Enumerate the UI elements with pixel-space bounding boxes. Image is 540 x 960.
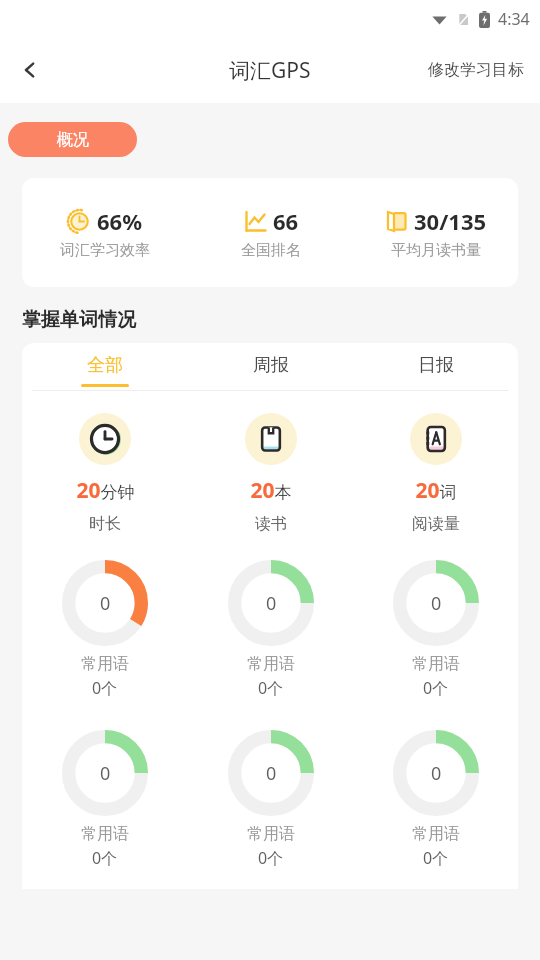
staticText: 0 xyxy=(266,591,277,616)
staticText: 20词 xyxy=(415,476,457,505)
button[interactable]: 0 xyxy=(22,730,188,869)
staticText: 全国排名 xyxy=(241,241,301,260)
staticText: 常用语 xyxy=(81,654,129,674)
staticText: 常用语 xyxy=(412,654,460,674)
staticText: 0 xyxy=(100,761,111,786)
staticText: 修改学习目标 xyxy=(428,60,524,80)
staticText: 20分钟 xyxy=(76,476,135,505)
button[interactable]: 概况 xyxy=(8,122,137,157)
button[interactable]: 66% xyxy=(22,206,188,260)
staticText: 0个 xyxy=(258,677,284,699)
button[interactable]: 周报 xyxy=(188,343,353,391)
staticText: 词汇学习效率 xyxy=(60,241,150,260)
staticText: 0 xyxy=(431,591,442,616)
staticText: 概况 xyxy=(57,130,89,150)
staticText: 0 xyxy=(266,761,277,786)
staticText: 全部 xyxy=(87,354,123,377)
button[interactable]: 0 xyxy=(22,560,188,699)
staticText: 阅读量 xyxy=(412,514,460,534)
button[interactable]: 0 xyxy=(353,560,518,699)
staticText: 时长 xyxy=(89,514,121,534)
staticText: 4:34 xyxy=(498,8,530,30)
button[interactable]: Back xyxy=(8,48,52,92)
staticText: 词汇GPS xyxy=(229,56,311,85)
button[interactable]: 20分钟 xyxy=(22,413,188,534)
staticText: 20本 xyxy=(250,476,292,505)
button[interactable]: 0 xyxy=(353,730,518,869)
button[interactable]: 20词 xyxy=(353,413,518,534)
staticText: 0个 xyxy=(92,677,118,699)
staticText: 0个 xyxy=(92,847,118,869)
staticText: 30/135 xyxy=(414,206,487,236)
staticText: 66% xyxy=(97,206,143,236)
button[interactable]: 日报 xyxy=(353,343,518,391)
button[interactable]: 66 xyxy=(188,206,353,260)
staticText: 常用语 xyxy=(81,824,129,844)
button[interactable]: 30/135 xyxy=(353,206,518,260)
staticText: 0个 xyxy=(423,847,449,869)
staticText: 掌握单词情况 xyxy=(22,308,136,332)
button[interactable]: 0 xyxy=(188,730,353,869)
button[interactable]: 全部 xyxy=(22,343,188,391)
button[interactable]: 0 xyxy=(188,560,353,699)
staticText: 0个 xyxy=(423,677,449,699)
staticText: 常用语 xyxy=(247,654,295,674)
staticText: 常用语 xyxy=(412,824,460,844)
button[interactable]: 20本 xyxy=(188,413,353,534)
button[interactable]: 修改学习目标 xyxy=(424,52,528,88)
staticText: 0 xyxy=(100,591,111,616)
staticText: 周报 xyxy=(253,354,289,377)
staticText: 读书 xyxy=(255,514,287,534)
staticText: 66 xyxy=(273,206,299,236)
staticText: 平均月读书量 xyxy=(391,241,481,260)
staticText: 常用语 xyxy=(247,824,295,844)
staticText: 日报 xyxy=(418,354,454,377)
staticText: 0个 xyxy=(258,847,284,869)
staticText: 0 xyxy=(431,761,442,786)
